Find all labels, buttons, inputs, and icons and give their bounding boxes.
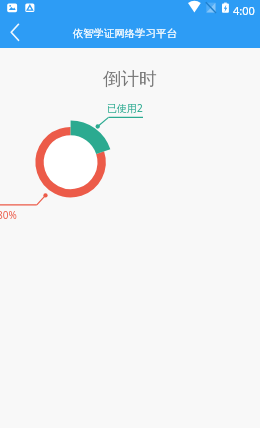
- staticText: 未使用80%: [0, 208, 17, 222]
- staticText: 已使用20%: [107, 101, 143, 115]
- staticText: 倒计时: [0, 68, 260, 91]
- staticText: 4:00: [233, 3, 255, 18]
- button[interactable]: Back: [0, 17, 31, 48]
- staticText: 依智学证网络学习平台: [73, 27, 177, 40]
